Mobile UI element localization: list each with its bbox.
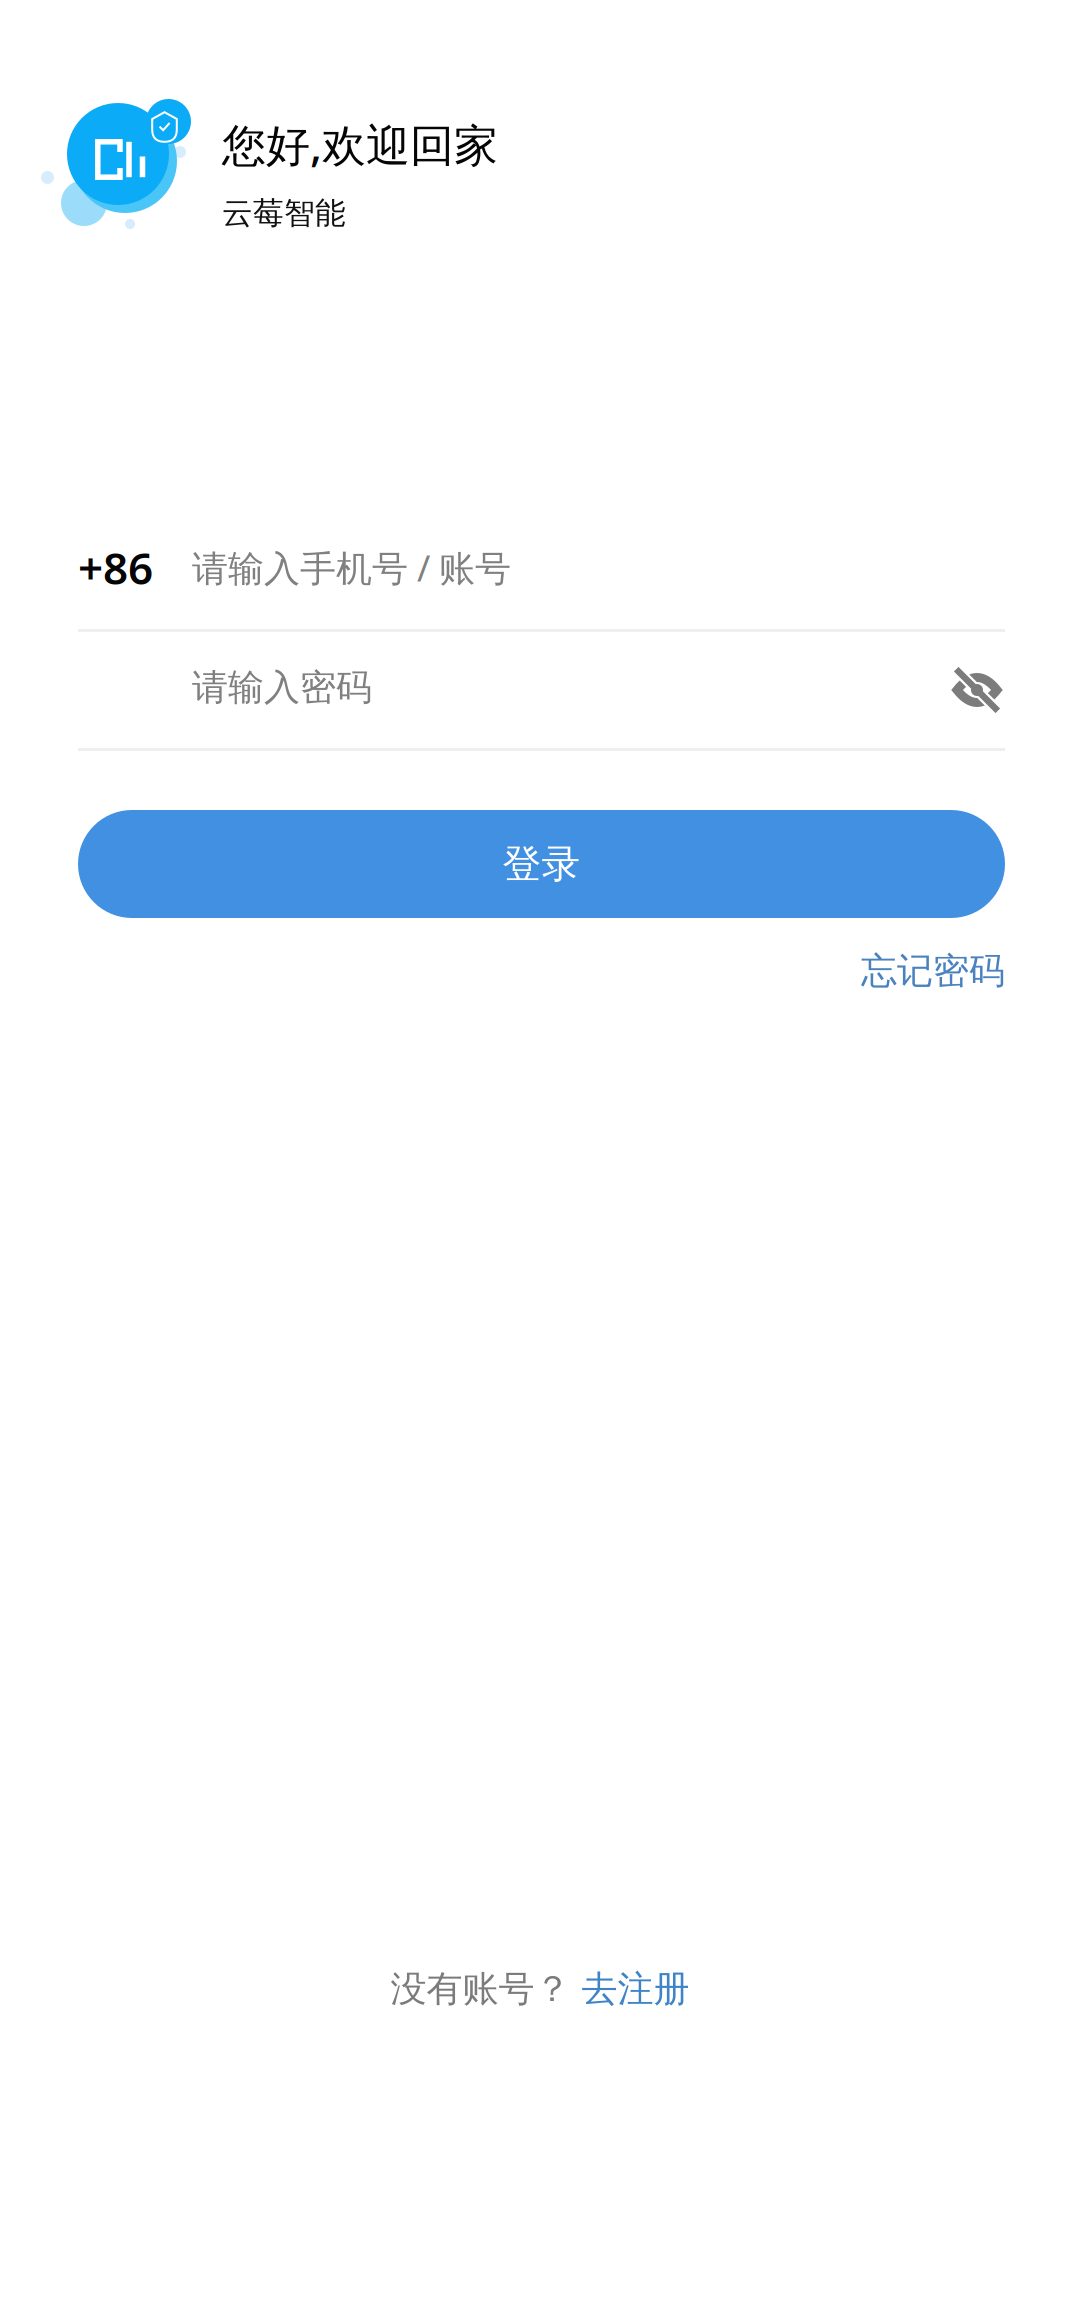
button[interactable]: +86 <box>78 510 192 629</box>
staticText: 您好,欢迎回家 <box>222 115 498 173</box>
staticText: 登录 <box>502 840 580 888</box>
button[interactable]: 忘记密码 <box>861 939 1005 1003</box>
staticText: 去注册 <box>581 1967 689 2011</box>
staticText: +86 <box>78 538 153 597</box>
button[interactable]: 去注册 <box>581 1967 689 2011</box>
staticText: 云莓智能 <box>222 194 346 232</box>
staticText: 请输入手机号 / 账号 <box>192 544 511 591</box>
staticText: 忘记密码 <box>861 949 1005 993</box>
button[interactable]: 登录 <box>78 810 1005 918</box>
staticText: 没有账号？ <box>390 1967 570 2011</box>
staticText: 请输入密码 <box>192 665 372 710</box>
button[interactable]: 显示密码 <box>929 644 1005 736</box>
